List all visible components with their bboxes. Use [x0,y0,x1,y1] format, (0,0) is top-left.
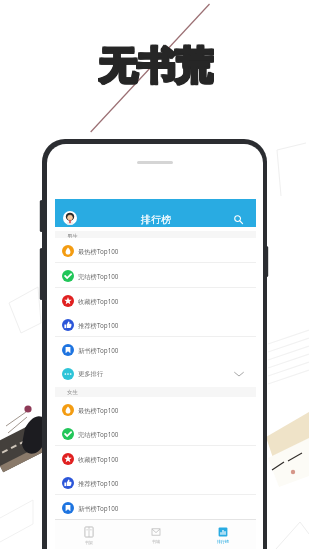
button[interactable]: 排行榜 [189,520,256,549]
staticText: 女生 [67,389,78,396]
staticText: 无书荒 [100,43,214,89]
staticText: 无书荒 [98,42,212,88]
staticText: 无书荒 [100,42,214,88]
button[interactable]: 收藏榜Top100 [55,288,256,313]
button[interactable]: 最热榜Top100 [55,238,256,263]
button[interactable]: 新书榜Top100 [55,495,256,520]
button[interactable]: Profile [63,211,77,225]
button[interactable]: 更多排行 [55,361,256,386]
staticText: 新书榜Top100 [78,346,119,355]
button[interactable]: 完结榜Top100 [55,421,256,446]
staticText: 新书榜Top100 [78,504,119,513]
button[interactable]: 收藏榜Top100 [55,446,256,471]
button[interactable]: 书架 [55,520,122,549]
staticText: 无书荒 [98,41,212,87]
button[interactable]: 完结榜Top100 [55,263,256,288]
staticText: 无书荒 [99,43,213,89]
staticText: 无书荒 [99,42,213,88]
button[interactable]: 推荐榜Top100 [55,312,256,337]
button[interactable]: 书城 [122,520,189,549]
button[interactable]: 新书榜Top100 [55,337,256,362]
staticText: 最热榜Top100 [78,406,119,415]
staticText: 收藏榜Top100 [78,455,119,464]
staticText: 推荐榜Top100 [78,321,119,330]
staticText: 无书荒 [99,41,213,87]
staticText: 排行榜 [217,539,229,544]
staticText: 书城 [152,539,160,544]
staticText: 最热榜Top100 [78,247,119,256]
staticText: 书架 [85,540,93,545]
staticText: 更多排行 [78,370,104,378]
staticText: 排行榜 [141,213,171,226]
staticText: 无书荒 [100,41,214,87]
staticText: 无书荒 [98,43,212,89]
button[interactable]: 最热榜Top100 [55,397,256,422]
button[interactable]: Search [231,212,245,226]
button[interactable]: 推荐榜Top100 [55,470,256,495]
staticText: 完结榜Top100 [78,272,119,281]
staticText: 推荐榜Top100 [78,479,119,488]
staticText: 完结榜Top100 [78,430,119,439]
staticText: 男生 [67,233,78,240]
staticText: 收藏榜Top100 [78,297,119,306]
